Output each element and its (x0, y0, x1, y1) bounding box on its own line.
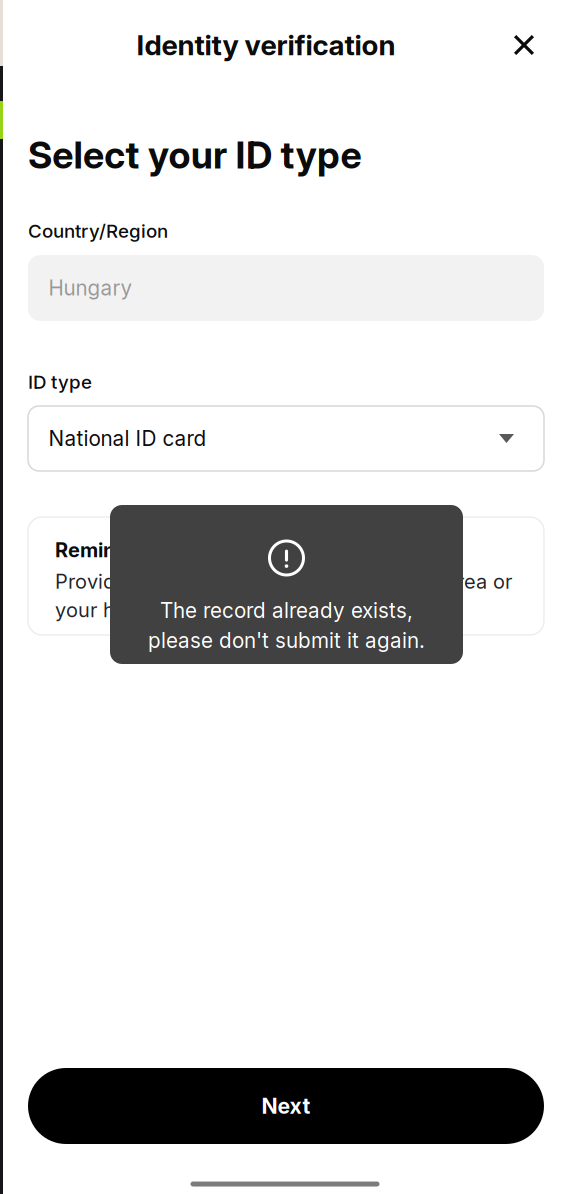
staticText: Hungary (48, 275, 132, 300)
staticText: Next (261, 1093, 310, 1119)
staticText: ID type (28, 371, 92, 393)
staticText: please don't submit it again. (148, 628, 425, 653)
staticText: National ID card (48, 426, 206, 451)
staticText: Identity verification (136, 28, 395, 62)
button[interactable]: Next (28, 1068, 544, 1144)
button[interactable]: National ID card (28, 406, 544, 471)
button[interactable]: Hungary (28, 255, 544, 321)
staticText: Provide your ID issued in your registere… (55, 569, 512, 594)
staticText: Reminder (55, 538, 148, 562)
staticText: your home country. (55, 598, 240, 622)
staticText: Select your ID type (28, 132, 361, 178)
staticText: The record already exists, (160, 598, 413, 623)
staticText: Country/Region (28, 220, 168, 242)
button[interactable]: Close (498, 19, 550, 71)
